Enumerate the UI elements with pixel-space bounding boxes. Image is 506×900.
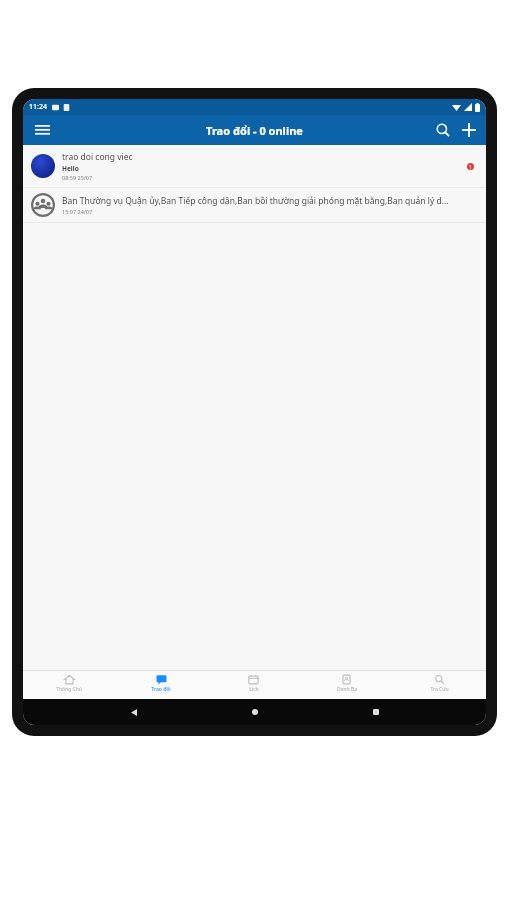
staticText: trao doi cong viec <box>62 151 133 163</box>
staticText: Trao đổi - 0 online <box>206 123 303 138</box>
staticText: Ban Thường vụ Quận ủy,Ban Tiếp công dân,… <box>62 195 449 207</box>
button[interactable]: Thông Chú <box>23 671 115 699</box>
button[interactable]: Add <box>456 117 482 143</box>
button[interactable]: Back <box>121 700 145 724</box>
button[interactable]: Menu <box>29 117 55 143</box>
button[interactable]: trao doi cong viec <box>23 145 486 187</box>
button[interactable]: Trao đổi <box>115 671 207 699</box>
staticText: 15:07 24/07 <box>62 208 93 215</box>
button[interactable]: Ban Thường vụ Quận ủy,Ban Tiếp công dân,… <box>23 188 486 222</box>
staticText: 08:59 25/07 <box>62 174 93 181</box>
button[interactable]: Search <box>430 117 456 143</box>
staticText: Hello <box>62 164 79 173</box>
button[interactable]: Danh Bạ <box>300 671 393 699</box>
staticText: Lịch <box>249 686 259 693</box>
staticText: Thông Chú <box>56 686 82 693</box>
button[interactable]: Tra Cứu <box>393 671 486 699</box>
staticText: Tra Cứu <box>430 686 449 693</box>
button[interactable]: Home <box>243 700 267 724</box>
staticText: Trao đổi <box>151 686 171 693</box>
staticText: 1 <box>469 164 472 170</box>
button[interactable]: Recents <box>364 700 388 724</box>
button[interactable]: Lịch <box>207 671 300 699</box>
staticText: 11:24 <box>29 102 47 112</box>
staticText: Danh Bạ <box>337 686 357 693</box>
